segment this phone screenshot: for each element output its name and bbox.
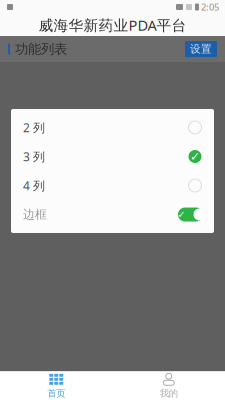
button[interactable]: 3 列 — [11, 142, 214, 171]
staticText: ✓ — [177, 209, 185, 220]
staticText: ✓ — [190, 150, 200, 163]
staticText: 边框 — [23, 207, 47, 222]
staticText: 2:05 — [201, 1, 219, 13]
staticText: 3 列 — [23, 148, 45, 164]
staticText: 首页 — [47, 388, 65, 399]
button[interactable]: 我的 — [112, 372, 225, 400]
staticText: 威海华新药业PDA平台 — [38, 15, 186, 35]
button[interactable]: 设置 — [185, 41, 217, 57]
button[interactable]: 2 列 — [11, 113, 214, 142]
staticText: 设置 — [190, 42, 212, 55]
button[interactable]: 4 列 — [11, 171, 214, 200]
staticText: 4 列 — [23, 177, 45, 193]
staticText: 我的 — [160, 388, 178, 399]
staticText: 功能列表 — [15, 41, 67, 57]
button[interactable]: 边框 — [11, 200, 214, 229]
button[interactable]: 首页 — [0, 372, 112, 400]
staticText: 2 列 — [23, 119, 45, 135]
